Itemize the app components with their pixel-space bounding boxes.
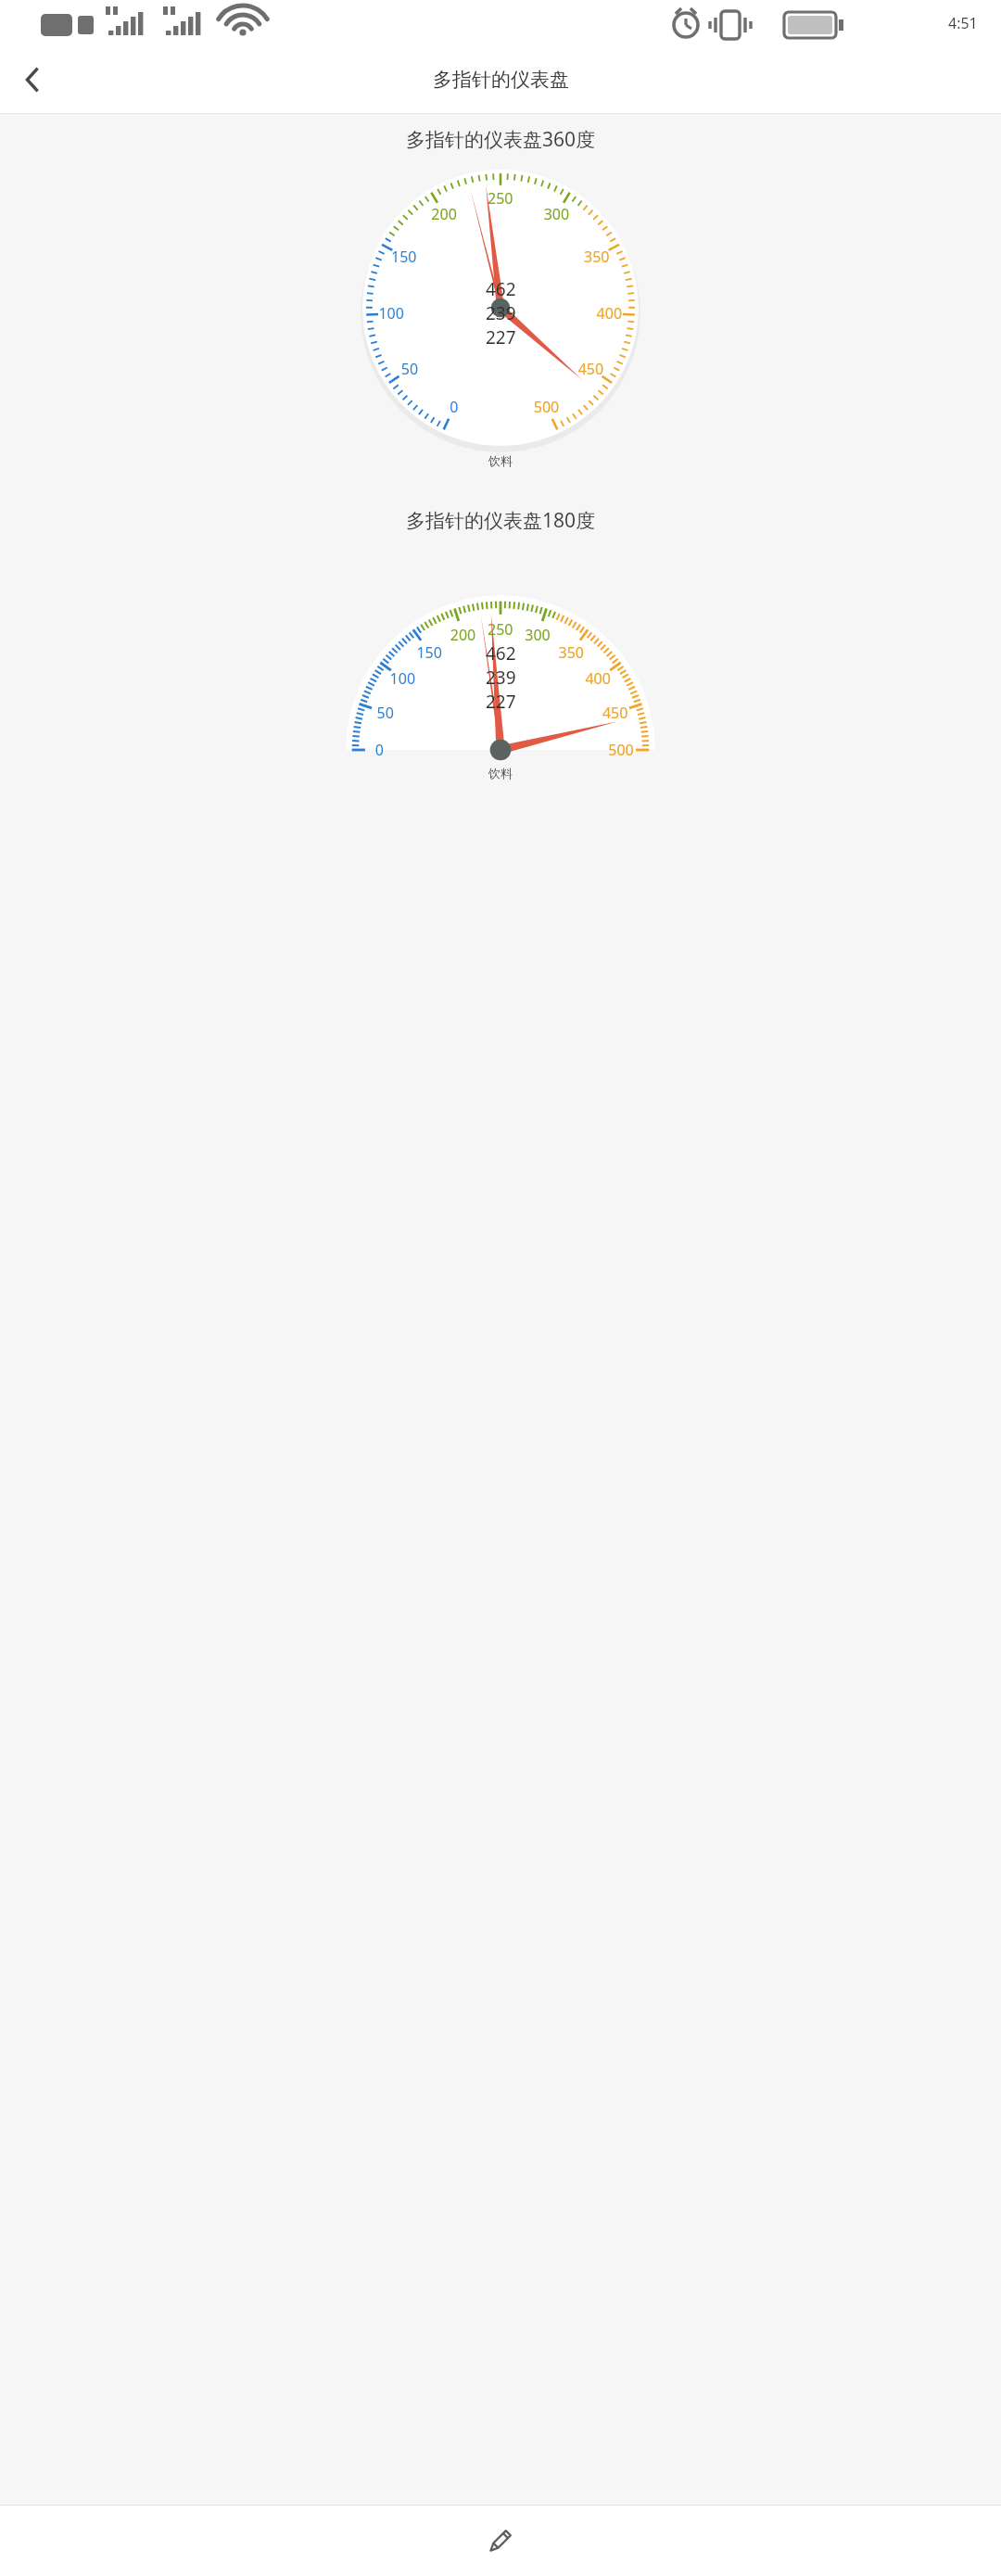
staticText: 227 [486, 325, 516, 349]
staticText: 多指针的仪表盘 [433, 68, 569, 92]
staticText: 多指针的仪表盘360度 [0, 126, 1001, 153]
staticText: 462 [486, 641, 516, 666]
staticText: 462 [486, 277, 516, 301]
button[interactable]: Edit [471, 2511, 530, 2570]
staticText: 4:51 [948, 13, 978, 33]
staticText: 饮料 [0, 453, 1001, 468]
staticText: 227 [486, 690, 516, 714]
staticText: 多指针的仪表盘180度 [0, 507, 1001, 534]
staticText: 239 [486, 666, 516, 690]
button[interactable]: Back [6, 53, 59, 107]
staticText: 饮料 [0, 766, 1001, 780]
staticText: 239 [486, 301, 516, 325]
